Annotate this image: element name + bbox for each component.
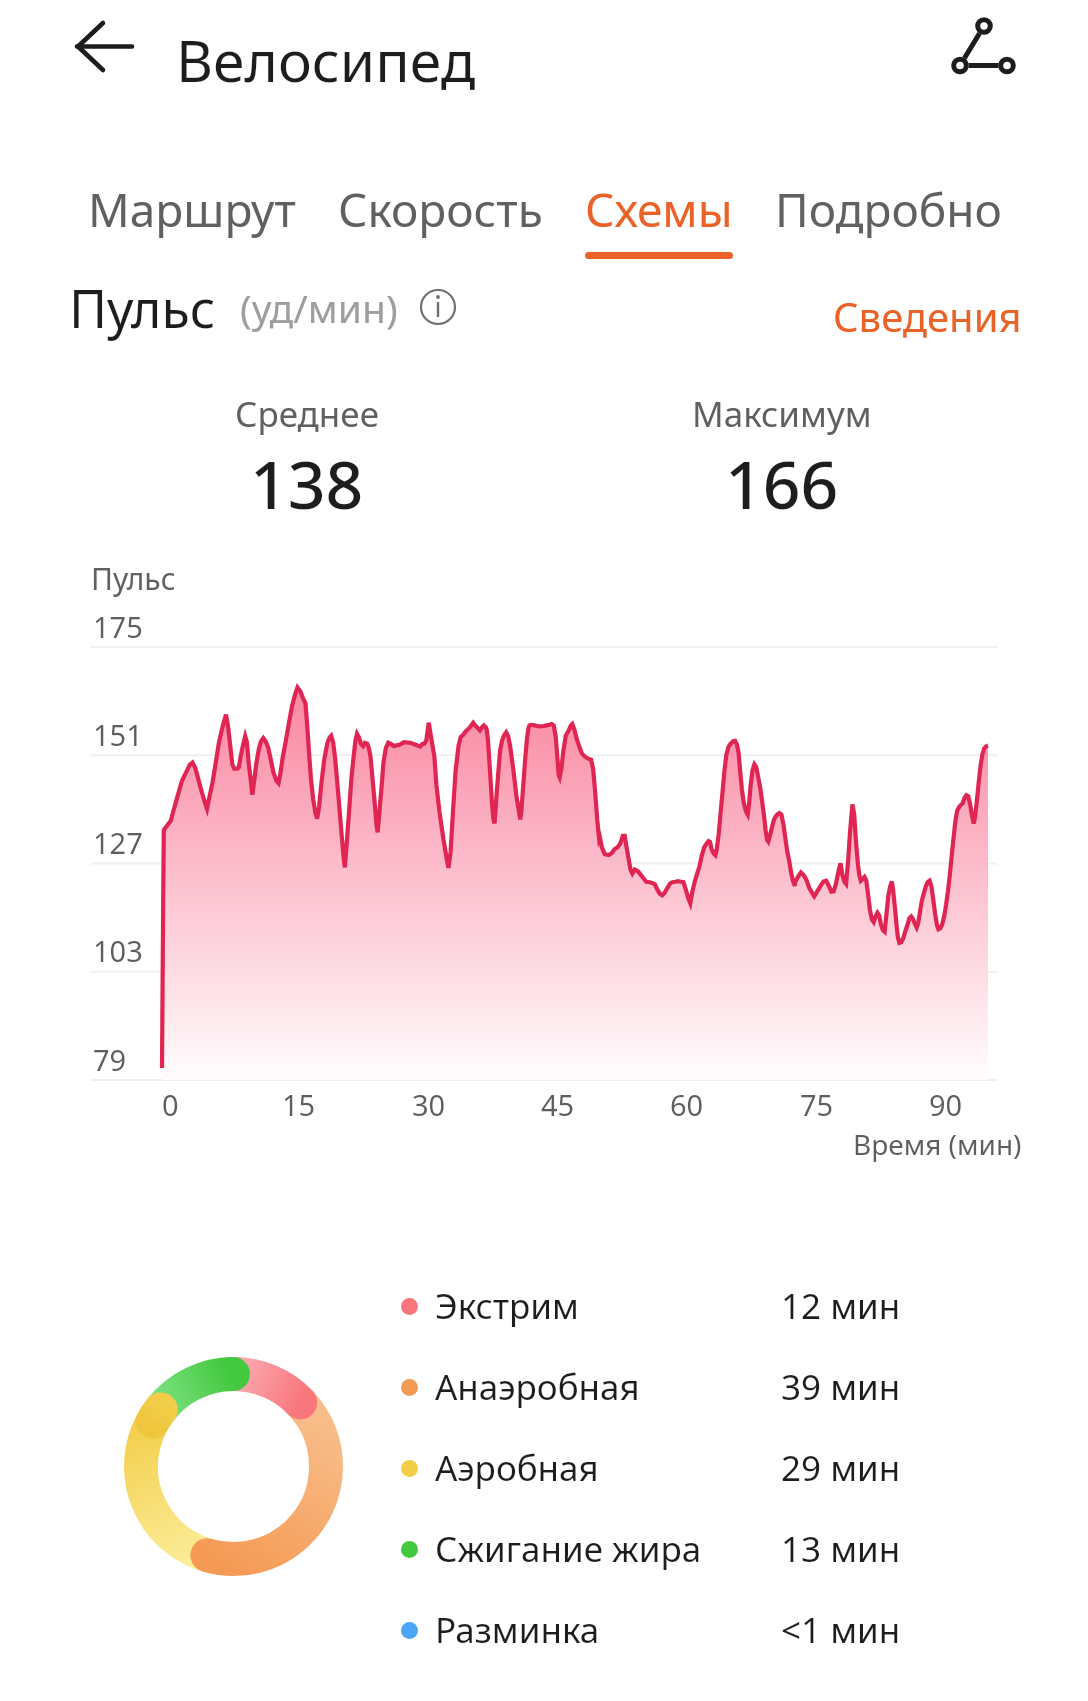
staticText: 13 мин (781, 1525, 901, 1573)
staticText: Пульс (69, 272, 216, 343)
staticText: Аэробная (435, 1444, 599, 1492)
button[interactable]: Подробно (775, 178, 1002, 259)
staticText: 0 (162, 1085, 179, 1124)
staticText: Сжигание жира (435, 1525, 702, 1573)
staticText: Время (мин) (853, 1125, 1022, 1163)
button[interactable]: Маршрут (88, 178, 296, 259)
staticText: 166 (725, 438, 839, 528)
staticText: Анаэробная (435, 1363, 640, 1411)
staticText: Пульс (91, 558, 176, 599)
staticText: 151 (93, 715, 143, 754)
staticText: Разминка (435, 1606, 600, 1654)
staticText: Максимум (692, 390, 872, 438)
button[interactable]: Назад (62, 5, 146, 89)
staticText: Скорость (338, 178, 543, 241)
staticText: 12 мин (781, 1282, 901, 1330)
button[interactable]: Экстрим (401, 1266, 916, 1346)
staticText: Схемы (585, 178, 733, 241)
staticText: 45 (541, 1085, 575, 1124)
button[interactable]: Справка (416, 285, 461, 330)
staticText: 60 (670, 1085, 704, 1124)
staticText: 15 (282, 1085, 316, 1124)
staticText: 30 (412, 1085, 446, 1124)
staticText: 79 (93, 1040, 127, 1079)
staticText: 127 (93, 823, 143, 862)
staticText: Экстрим (435, 1282, 579, 1330)
button[interactable]: Схемы (585, 178, 733, 259)
staticText: 103 (93, 931, 143, 970)
staticText: Подробно (775, 178, 1002, 241)
button[interactable]: Аэробная (401, 1428, 916, 1508)
staticText: 175 (93, 607, 143, 646)
button[interactable]: Анаэробная (401, 1347, 916, 1427)
staticText: 29 мин (781, 1444, 901, 1492)
staticText: 39 мин (781, 1363, 901, 1411)
button[interactable]: Разминка (401, 1590, 916, 1670)
staticText: 138 (250, 438, 364, 528)
staticText: (уд/мин) (240, 281, 398, 334)
button[interactable]: Сведения (833, 289, 1022, 343)
button[interactable]: Скорость (338, 178, 543, 259)
button[interactable]: Сжигание жира (401, 1509, 916, 1589)
staticText: Маршрут (88, 178, 296, 241)
staticText: 90 (929, 1085, 963, 1124)
staticText: 75 (800, 1085, 834, 1124)
staticText: Среднее (235, 390, 379, 438)
staticText: Сведения (833, 289, 1022, 343)
button[interactable]: Поделиться (942, 6, 1026, 90)
staticText: <1 мин (781, 1606, 901, 1654)
staticText: Велосипед (176, 21, 476, 99)
